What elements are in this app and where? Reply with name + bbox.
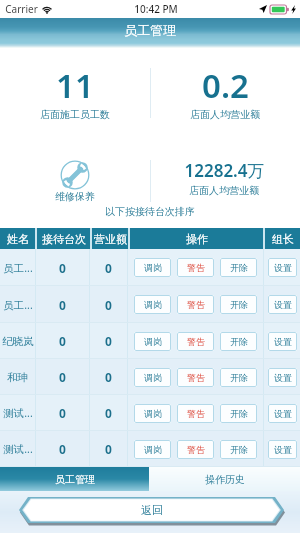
button[interactable]: 设置 (268, 332, 297, 351)
staticText: 设置 (274, 262, 292, 273)
staticText: 0 (105, 333, 112, 349)
staticText: 操作历史 (205, 473, 245, 486)
staticText: 以下按接待台次排序 (105, 205, 195, 218)
staticText: 调岗 (144, 262, 162, 273)
staticText: 设置 (274, 372, 292, 383)
staticText: 开除 (230, 372, 248, 383)
button[interactable]: 警告 (177, 295, 214, 314)
staticText: 0 (105, 405, 112, 421)
button[interactable]: 纪晓岚 (0, 323, 300, 359)
button[interactable]: 开除 (220, 332, 257, 351)
staticText: 测试... (3, 406, 33, 420)
staticText: 调岗 (144, 336, 162, 347)
staticText: 姓名 (7, 232, 29, 246)
button[interactable]: 开除 (220, 258, 257, 277)
staticText: 开除 (230, 444, 248, 455)
staticText: 警告 (187, 336, 205, 347)
staticText: 0 (59, 297, 66, 313)
button[interactable]: 警告 (177, 368, 214, 387)
staticText: 0 (59, 260, 66, 276)
staticText: 操作 (186, 232, 208, 246)
staticText: 维修保养 (55, 190, 95, 203)
staticText: 警告 (187, 408, 205, 419)
button[interactable]: 开除 (220, 368, 257, 387)
staticText: 开除 (230, 336, 248, 347)
staticText: 11 (56, 63, 94, 108)
staticText: 店面施工员工数 (40, 108, 110, 121)
staticText: 设置 (274, 444, 292, 455)
staticText: 员工... (3, 298, 33, 312)
staticText: 调岗 (144, 372, 162, 383)
staticText: 返回 (141, 503, 163, 517)
staticText: 设置 (274, 336, 292, 347)
staticText: 营业额 (94, 232, 127, 246)
staticText: 店面人均营业额 (189, 184, 259, 197)
button[interactable]: 调岗 (134, 295, 171, 314)
button[interactable]: 返回 (19, 497, 284, 523)
staticText: 警告 (187, 262, 205, 273)
button[interactable]: 开除 (220, 295, 257, 314)
button[interactable]: 测试... (0, 431, 300, 467)
staticText: 12282.4万 (184, 159, 265, 182)
button[interactable]: 员工... (0, 249, 300, 286)
staticText: 0 (59, 441, 66, 457)
staticText: 警告 (187, 372, 205, 383)
staticText: 开除 (230, 262, 248, 273)
staticText: 警告 (187, 444, 205, 455)
staticText: 员工... (3, 261, 33, 275)
button[interactable]: 开除 (220, 440, 257, 459)
staticText: 组长 (272, 232, 294, 246)
staticText: 0 (105, 297, 112, 313)
staticText: 0 (59, 405, 66, 421)
staticText: 设置 (274, 408, 292, 419)
button[interactable]: 设置 (268, 404, 297, 423)
button[interactable]: 警告 (177, 258, 214, 277)
button[interactable]: 警告 (177, 332, 214, 351)
staticText: 0 (105, 369, 112, 385)
button[interactable]: 调岗 (134, 258, 171, 277)
staticText: 0.2 (202, 63, 249, 108)
button[interactable]: 调岗 (134, 368, 171, 387)
button[interactable]: 设置 (268, 258, 297, 277)
button[interactable]: 调岗 (134, 404, 171, 423)
button[interactable]: 调岗 (134, 440, 171, 459)
staticText: 接待台次 (42, 232, 86, 246)
button[interactable]: 员工管理 (0, 467, 149, 491)
button[interactable]: 操作历史 (149, 467, 300, 491)
button[interactable]: 警告 (177, 404, 214, 423)
button[interactable]: 设置 (268, 440, 297, 459)
staticText: 0 (59, 333, 66, 349)
button[interactable]: 设置 (268, 368, 297, 387)
staticText: Carrier (5, 2, 38, 16)
staticText: 警告 (187, 299, 205, 310)
staticText: 纪晓岚 (2, 335, 34, 348)
staticText: 店面人均营业额 (190, 108, 260, 121)
staticText: 开除 (230, 299, 248, 310)
button[interactable]: 维修保养 (0, 160, 150, 203)
staticText: 员工管理 (55, 473, 95, 486)
staticText: 0 (59, 369, 66, 385)
staticText: 和珅 (7, 371, 28, 384)
staticText: 设置 (274, 299, 292, 310)
button[interactable]: 设置 (268, 295, 297, 314)
staticText: 0 (105, 260, 112, 276)
staticText: 调岗 (144, 444, 162, 455)
button[interactable]: 员工... (0, 286, 300, 323)
staticText: 0 (105, 441, 112, 457)
button[interactable]: 调岗 (134, 332, 171, 351)
staticText: 开除 (230, 408, 248, 419)
button[interactable]: 开除 (220, 404, 257, 423)
staticText: 调岗 (144, 299, 162, 310)
staticText: 测试... (3, 442, 33, 456)
button[interactable]: 警告 (177, 440, 214, 459)
staticText: 10:42 PM (134, 2, 178, 16)
staticText: 员工管理 (124, 22, 176, 38)
button[interactable]: 和珅 (0, 359, 300, 395)
staticText: 调岗 (144, 408, 162, 419)
button[interactable]: 测试... (0, 395, 300, 431)
